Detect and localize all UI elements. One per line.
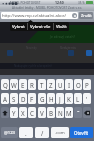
staticText: @123 bbox=[4, 130, 15, 136]
button[interactable]: H bbox=[47, 93, 55, 104]
staticText: Otevřít bbox=[74, 130, 89, 136]
button[interactable]: D bbox=[19, 93, 27, 104]
button[interactable]: @123 bbox=[1, 127, 18, 138]
staticText: L bbox=[76, 95, 80, 103]
staticText: X bbox=[21, 109, 25, 117]
staticText: Y bbox=[12, 109, 16, 117]
staticText: Vybrat bbox=[12, 24, 25, 30]
button[interactable]: ' bbox=[83, 93, 91, 104]
button[interactable]: L bbox=[74, 93, 82, 104]
button[interactable]: S bbox=[10, 93, 18, 104]
staticText: Novinky bbox=[26, 46, 37, 50]
staticText: Nakupujte rychle a bezpečně bbox=[14, 64, 52, 68]
staticText: C bbox=[30, 109, 34, 117]
button[interactable]: U bbox=[56, 79, 64, 90]
staticText: T bbox=[40, 81, 44, 89]
staticText: MOBIL POHOTOVOST bbox=[10, 1, 41, 5]
staticText: H bbox=[49, 95, 54, 103]
staticText: Aktuální letáky - MOBIL POHOTOVOST Zoot … bbox=[12, 6, 83, 10]
button[interactable]: Facebook bbox=[7, 50, 13, 56]
button[interactable]: http://www.mp.cz/aktualni-akce/ bbox=[1, 12, 78, 19]
staticText: V bbox=[40, 109, 44, 117]
button[interactable]: V bbox=[38, 107, 46, 118]
button[interactable]: Y bbox=[10, 107, 18, 118]
staticText: / bbox=[41, 129, 44, 137]
staticText: G bbox=[40, 95, 45, 103]
button[interactable]: Q bbox=[1, 79, 9, 90]
button[interactable]: Clear text bbox=[72, 13, 77, 18]
staticText: P bbox=[85, 81, 89, 89]
staticText: . bbox=[25, 129, 27, 137]
staticText: ˇ bbox=[77, 109, 80, 117]
button[interactable]: X bbox=[19, 107, 27, 118]
staticText: Zrušit bbox=[81, 13, 92, 18]
button[interactable]: J bbox=[56, 93, 64, 104]
button[interactable]: R bbox=[28, 79, 36, 90]
button[interactable]: A bbox=[1, 93, 9, 104]
staticText: F bbox=[30, 95, 34, 103]
staticText: A bbox=[3, 95, 7, 103]
staticText: O bbox=[76, 81, 81, 89]
staticText: E bbox=[21, 81, 25, 89]
staticText: I bbox=[68, 81, 71, 89]
button[interactable]: Backspace bbox=[83, 107, 91, 118]
button[interactable]: M bbox=[65, 107, 73, 118]
button[interactable]: N bbox=[56, 107, 64, 118]
button[interactable]: . bbox=[19, 127, 33, 138]
staticText: N bbox=[58, 109, 63, 117]
button[interactable]: Twitter bbox=[68, 50, 74, 56]
button[interactable]: Vybrat vše bbox=[30, 22, 51, 31]
button[interactable]: F bbox=[28, 93, 36, 104]
button[interactable]: Shift bbox=[1, 107, 9, 118]
staticText: D bbox=[21, 95, 26, 103]
staticText: Vybrat vše bbox=[30, 24, 51, 30]
button[interactable]: K bbox=[65, 93, 73, 104]
button[interactable]: W bbox=[10, 79, 18, 90]
button[interactable]: Zrušit bbox=[79, 12, 93, 19]
button[interactable]: / bbox=[35, 127, 49, 138]
staticText: Q bbox=[3, 81, 8, 89]
staticText: Je zdravý vztah? bbox=[50, 34, 75, 39]
button[interactable]: ˇ bbox=[74, 107, 82, 118]
button[interactable]: B bbox=[47, 107, 55, 118]
button[interactable]: G bbox=[38, 93, 46, 104]
button[interactable]: Z bbox=[47, 79, 55, 90]
button[interactable]: Otevřít bbox=[70, 127, 93, 138]
staticText: ' bbox=[86, 95, 88, 103]
staticText: 35 % bbox=[78, 1, 85, 5]
staticText: Vložit bbox=[56, 24, 67, 30]
staticText: Sledujte nás bbox=[60, 46, 76, 50]
button[interactable]: .com bbox=[51, 127, 69, 138]
staticText: B bbox=[49, 109, 54, 117]
button[interactable]: O bbox=[74, 79, 82, 90]
staticText: .com bbox=[55, 130, 65, 136]
staticText: W bbox=[11, 81, 17, 89]
staticText: M bbox=[66, 109, 72, 117]
staticText: K bbox=[67, 95, 71, 103]
button[interactable]: I bbox=[65, 79, 73, 90]
staticText: 12:50 bbox=[55, 0, 64, 5]
button[interactable]: App bbox=[86, 50, 92, 56]
button[interactable]: Vybrat bbox=[12, 22, 25, 31]
staticText: R bbox=[30, 81, 34, 89]
staticText: S bbox=[12, 95, 16, 103]
button[interactable]: P bbox=[83, 79, 91, 90]
button[interactable]: T bbox=[38, 79, 46, 90]
button[interactable]: Vložit bbox=[56, 22, 67, 31]
staticText: J bbox=[59, 95, 61, 103]
button[interactable]: C bbox=[28, 107, 36, 118]
staticText: Z bbox=[49, 81, 53, 89]
staticText: http://www.mp.cz/aktualni-akce/ bbox=[2, 13, 67, 19]
button[interactable]: E bbox=[19, 79, 27, 90]
staticText: U bbox=[58, 81, 63, 89]
